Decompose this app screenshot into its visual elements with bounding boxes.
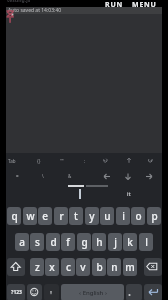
button[interactable]: e bbox=[38, 207, 52, 225]
button[interactable]: n bbox=[107, 258, 121, 276]
staticText: it bbox=[127, 190, 131, 198]
button[interactable] bbox=[144, 258, 162, 276]
staticText: ?123 bbox=[11, 289, 22, 296]
staticText: testing.js bbox=[7, 0, 31, 4]
button[interactable]: s bbox=[30, 233, 44, 251]
staticText: & bbox=[68, 173, 72, 179]
button[interactable]: l bbox=[139, 233, 153, 251]
button[interactable]: i bbox=[116, 207, 130, 225]
button[interactable]: r bbox=[54, 207, 68, 225]
button[interactable]: a bbox=[15, 233, 29, 251]
staticText: y bbox=[89, 209, 95, 223]
staticText: : bbox=[84, 158, 86, 164]
staticText: k bbox=[127, 235, 133, 249]
staticText: f bbox=[66, 235, 70, 249]
staticText: "" bbox=[60, 158, 64, 164]
staticText: s bbox=[35, 235, 40, 249]
staticText: c bbox=[66, 260, 71, 274]
button[interactable]: f bbox=[61, 233, 75, 251]
button[interactable]: ?123 bbox=[7, 284, 25, 300]
staticText: MENU bbox=[132, 0, 157, 10]
button[interactable] bbox=[44, 284, 59, 300]
button[interactable]: g bbox=[77, 233, 91, 251]
staticText: z bbox=[35, 260, 40, 274]
button[interactable]: x bbox=[45, 258, 59, 276]
button[interactable]: o bbox=[131, 207, 145, 225]
staticText: x bbox=[49, 260, 55, 274]
staticText: \ bbox=[42, 173, 44, 179]
staticText: g bbox=[81, 235, 88, 249]
staticText: h bbox=[96, 235, 103, 249]
button[interactable]: y bbox=[85, 207, 99, 225]
staticText: u bbox=[104, 209, 111, 223]
staticText: p bbox=[151, 209, 158, 223]
staticText: n bbox=[111, 260, 118, 274]
button[interactable]: m bbox=[123, 258, 137, 276]
button[interactable]: t bbox=[69, 207, 83, 225]
staticText: {} bbox=[37, 158, 41, 164]
button[interactable]: d bbox=[46, 233, 60, 251]
button[interactable]: k bbox=[123, 233, 137, 251]
button[interactable]: h bbox=[92, 233, 106, 251]
staticText: Auto saved at 14:03:40 bbox=[8, 7, 62, 14]
staticText: e bbox=[42, 209, 48, 223]
staticText: w bbox=[26, 209, 35, 223]
button[interactable] bbox=[103, 0, 125, 8]
button[interactable] bbox=[126, 284, 142, 300]
button[interactable]: u bbox=[100, 207, 114, 225]
button[interactable]: v bbox=[76, 258, 90, 276]
button[interactable]: z bbox=[30, 258, 44, 276]
button[interactable] bbox=[7, 258, 25, 276]
staticText: RUN bbox=[105, 0, 123, 10]
staticText: d bbox=[50, 235, 57, 249]
button[interactable]: ‹ English › bbox=[61, 284, 124, 300]
button[interactable] bbox=[131, 0, 161, 8]
staticText: q bbox=[11, 209, 18, 223]
button[interactable] bbox=[144, 284, 162, 300]
button[interactable]: q bbox=[7, 207, 21, 225]
staticText: o bbox=[135, 209, 142, 223]
staticText: r bbox=[59, 209, 64, 223]
staticText: m bbox=[125, 260, 135, 274]
staticText: j bbox=[114, 235, 117, 249]
button[interactable] bbox=[27, 284, 42, 300]
button[interactable]: w bbox=[23, 207, 37, 225]
button[interactable]: c bbox=[61, 258, 75, 276]
staticText: i bbox=[122, 209, 125, 223]
staticText: Tab bbox=[8, 158, 16, 164]
button[interactable]: b bbox=[92, 258, 106, 276]
staticText: t bbox=[74, 209, 78, 223]
staticText: ‹ English › bbox=[79, 289, 107, 297]
staticText: v bbox=[80, 260, 86, 274]
staticText: = bbox=[16, 173, 19, 179]
staticText: a bbox=[19, 235, 25, 249]
button[interactable]: p bbox=[147, 207, 161, 225]
staticText: l bbox=[145, 235, 148, 249]
staticText: b bbox=[96, 260, 103, 274]
button[interactable]: j bbox=[108, 233, 122, 251]
